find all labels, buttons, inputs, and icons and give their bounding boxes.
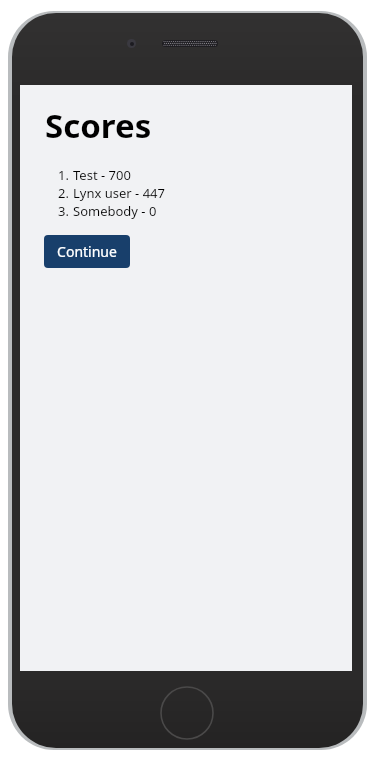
staticText: 2. (58, 184, 70, 202)
staticText: 1. (58, 166, 70, 184)
staticText: Test - 700 (73, 166, 131, 184)
staticText: Somebody - 0 (73, 202, 157, 220)
staticText: 3. (58, 202, 70, 220)
staticText: Scores (45, 103, 152, 148)
button[interactable]: Continue (44, 235, 130, 268)
staticText: Lynx user - 447 (73, 184, 165, 202)
staticText: Continue (57, 242, 117, 261)
